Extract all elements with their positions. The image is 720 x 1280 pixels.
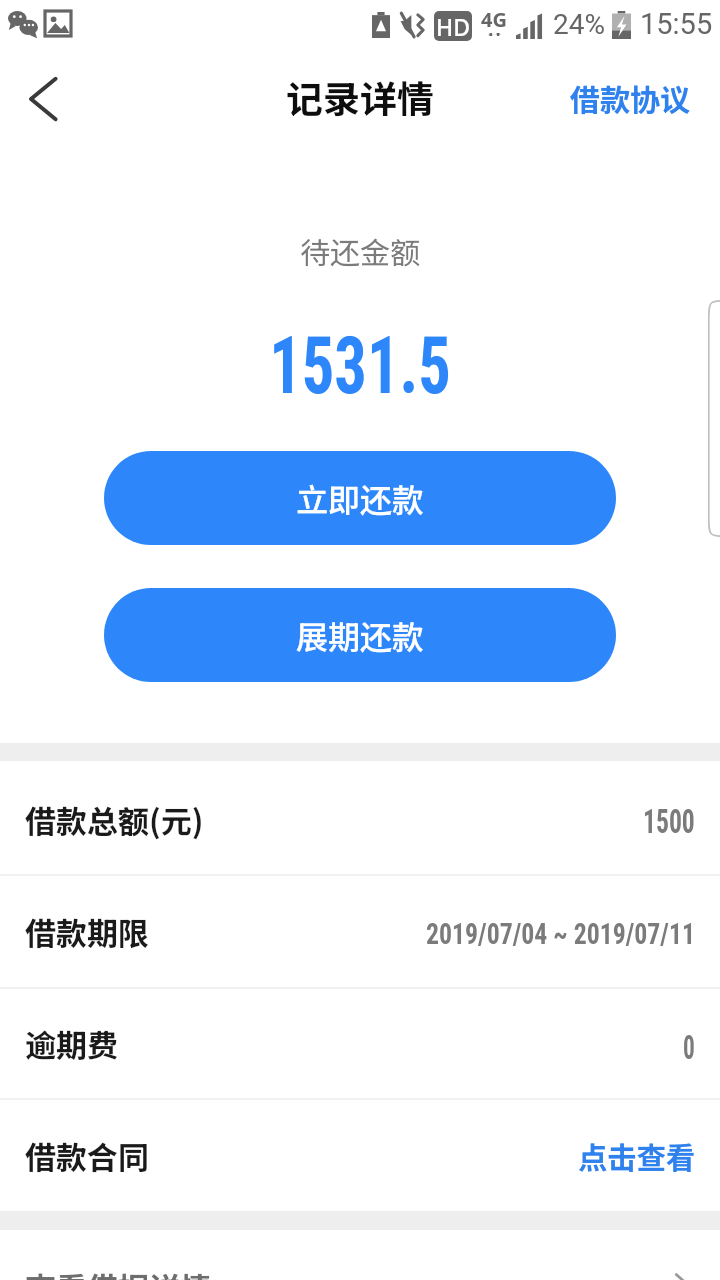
button[interactable]: Back [6, 66, 72, 132]
staticText: 借款总额(元) [25, 797, 204, 842]
staticText: 1531.5 [66, 320, 654, 413]
staticText: 2019/07/04 ~ 2019/07/11 [426, 916, 695, 951]
staticText: 15:55 [640, 7, 713, 41]
button[interactable]: 借款总额(元) [0, 761, 720, 875]
staticText: HD [436, 11, 471, 41]
staticText: 24% [553, 8, 605, 41]
staticText: 查看借据详情 [25, 1264, 211, 1280]
staticText: 借款合同 [25, 1133, 149, 1178]
staticText: 点击查看 [578, 1134, 695, 1177]
button[interactable]: 借款期限 [0, 875, 720, 988]
staticText: 借款协议 [570, 76, 690, 119]
button[interactable]: 借款合同 [0, 1099, 720, 1211]
staticText: 立即还款 [296, 475, 425, 521]
staticText: 借款期限 [25, 909, 149, 954]
staticText: 1500 [643, 802, 695, 841]
staticText: 0 [683, 1028, 695, 1067]
staticText: 逾期费 [25, 1021, 118, 1066]
button[interactable]: 查看借据详情 [0, 1230, 720, 1280]
button[interactable]: 逾期费 [0, 988, 720, 1099]
staticText: 待还金额 [0, 229, 720, 272]
staticText: 展期还款 [296, 612, 425, 658]
button[interactable]: 借款协议 [550, 63, 720, 136]
staticText: 4G [481, 6, 507, 33]
button[interactable]: 展期还款 [104, 588, 616, 682]
staticText: 记录详情 [286, 70, 434, 124]
button[interactable]: 立即还款 [104, 451, 616, 545]
